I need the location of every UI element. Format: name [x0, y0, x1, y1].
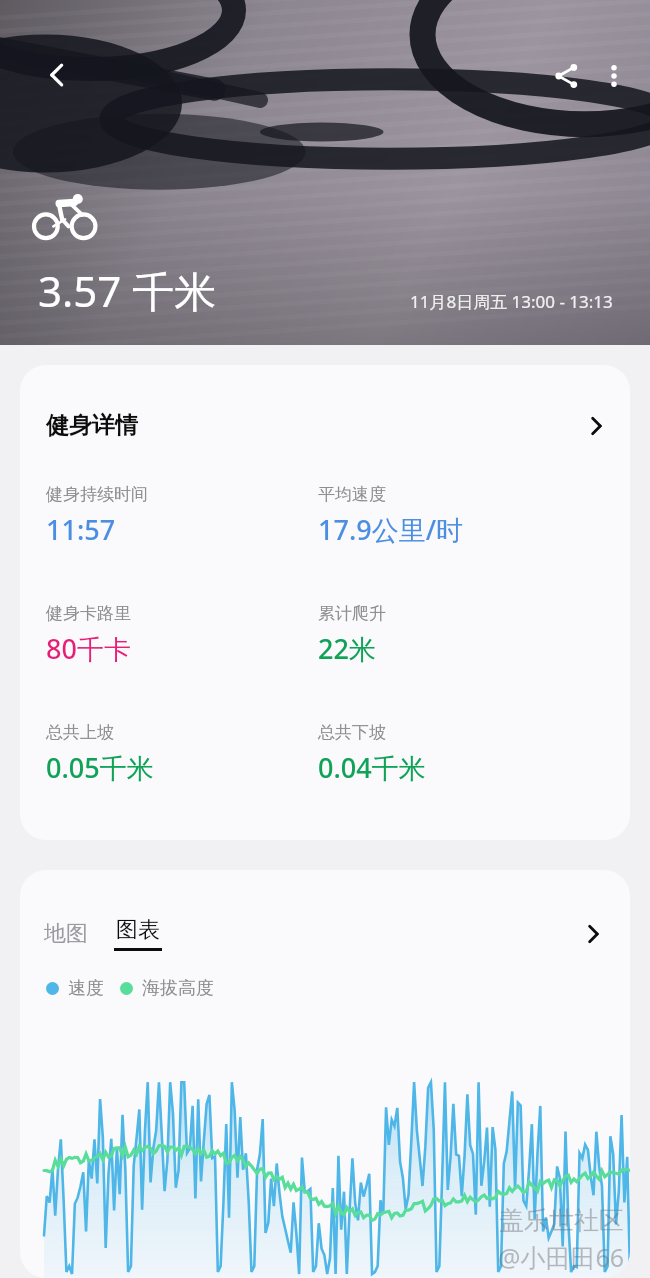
- staticText: 0.05千米: [46, 749, 154, 786]
- staticText: 健身卡路里: [46, 603, 131, 624]
- staticText: 盖乐世社区: [499, 1205, 624, 1236]
- staticText: 速度: [68, 977, 104, 1000]
- button[interactable]: Back: [34, 52, 80, 98]
- button[interactable]: Open chart: [578, 919, 608, 949]
- staticText: 3.57 千米: [38, 262, 217, 319]
- staticText: 累计爬升: [318, 603, 386, 624]
- staticText: 健身持续时间: [46, 484, 148, 505]
- staticText: 总共下坡: [318, 722, 386, 743]
- button[interactable]: 健身详情: [20, 365, 630, 840]
- staticText: 11月8日周五 13:00 - 13:13: [410, 290, 613, 313]
- button[interactable]: 地图: [44, 920, 88, 948]
- staticText: @小田田66: [497, 1240, 624, 1274]
- staticText: 海拔高度: [142, 977, 214, 1000]
- staticText: 80千卡: [46, 630, 131, 667]
- staticText: 平均速度: [318, 484, 386, 505]
- button[interactable]: More options: [590, 52, 638, 100]
- button[interactable]: 图表: [114, 916, 162, 951]
- staticText: 图表: [116, 916, 160, 944]
- staticText: 17.9公里/时: [318, 511, 464, 548]
- button[interactable]: Share: [542, 52, 590, 100]
- staticText: 健身详情: [46, 411, 138, 440]
- staticText: 0.04千米: [318, 749, 426, 786]
- staticText: 11:57: [46, 511, 116, 548]
- staticText: 地图: [44, 920, 88, 948]
- staticText: 总共上坡: [46, 722, 114, 743]
- staticText: 22米: [318, 630, 376, 667]
